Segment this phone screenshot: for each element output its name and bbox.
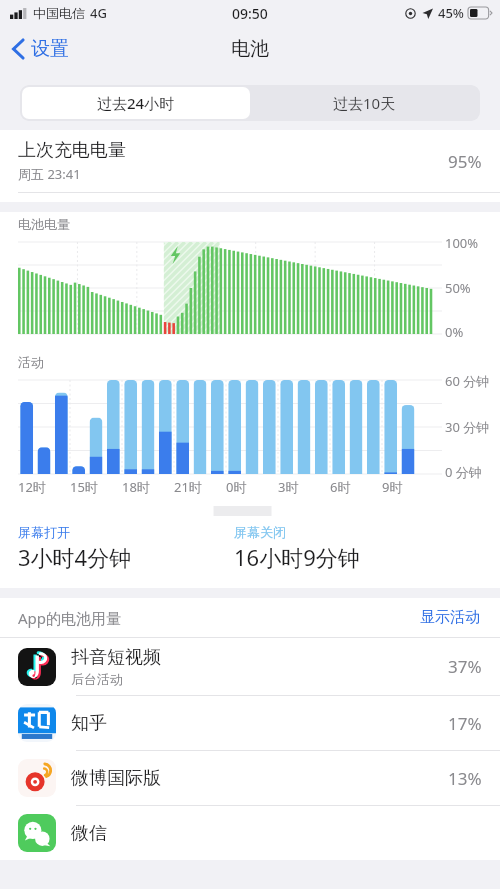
staticText: 95% [448, 150, 482, 173]
button[interactable]: 显示活动 [418, 606, 482, 629]
staticText: 100% [445, 234, 479, 252]
staticText: 屏幕关闭 [234, 524, 286, 540]
staticText: 知乎 [71, 712, 107, 735]
button[interactable]: 微信 [0, 806, 500, 860]
staticText: 过去10天 [333, 93, 396, 113]
staticText: 45% [438, 4, 464, 22]
staticText: 16小时9分钟 [234, 542, 360, 572]
staticText: 0时 [226, 478, 247, 496]
other: 知乎 [18, 704, 56, 742]
staticText: 15时 [70, 478, 98, 496]
staticText: 活动 [18, 354, 44, 370]
staticText: 3时 [278, 478, 299, 496]
staticText: 过去24小时 [97, 93, 175, 113]
button[interactable]: 上次充电电量 [0, 130, 500, 192]
button[interactable]: 知乎 [0, 696, 500, 751]
staticText: 13% [448, 767, 482, 790]
staticText: 中国电信 [33, 5, 85, 21]
staticText: 12时 [18, 478, 46, 496]
staticText: 37% [448, 655, 482, 678]
button[interactable]: 过去10天 [250, 87, 478, 119]
staticText: 微信 [71, 822, 107, 845]
staticText: 0 分钟 [445, 463, 482, 481]
button[interactable]: 设置 [8, 31, 73, 67]
staticText: 周五 23:41 [18, 165, 81, 183]
staticText: 设置 [31, 37, 69, 61]
staticText: 50% [445, 279, 471, 297]
staticText: 电池 [231, 37, 269, 61]
staticText: 30 分钟 [445, 418, 490, 436]
staticText: 9时 [382, 478, 403, 496]
staticText: 屏幕打开 [18, 524, 70, 540]
staticText: 18时 [122, 478, 150, 496]
staticText: 微博国际版 [71, 767, 161, 790]
staticText: 抖音短视频 [71, 646, 161, 669]
staticText: 3小时4分钟 [18, 542, 132, 572]
staticText: 21时 [174, 478, 202, 496]
staticText: 60 分钟 [445, 372, 490, 390]
staticText: 后台活动 [71, 671, 123, 687]
other: 微博国际版 [18, 759, 56, 797]
staticText: 17% [448, 712, 482, 735]
staticText: 0% [445, 323, 464, 341]
staticText: 09:50 [232, 4, 268, 23]
other: 抖音短视频 [18, 648, 56, 686]
button[interactable]: 抖音短视频 [0, 638, 500, 696]
staticText: 显示活动 [420, 608, 480, 627]
staticText: 电池电量 [18, 216, 70, 232]
staticText: 6时 [330, 478, 351, 496]
staticText: 4G [90, 4, 107, 22]
staticText: 上次充电电量 [18, 139, 126, 162]
button[interactable]: 微博国际版 [0, 751, 500, 806]
other: 微信 [18, 814, 56, 852]
button[interactable]: 过去24小时 [22, 87, 250, 119]
staticText: App的电池用量 [18, 608, 418, 628]
